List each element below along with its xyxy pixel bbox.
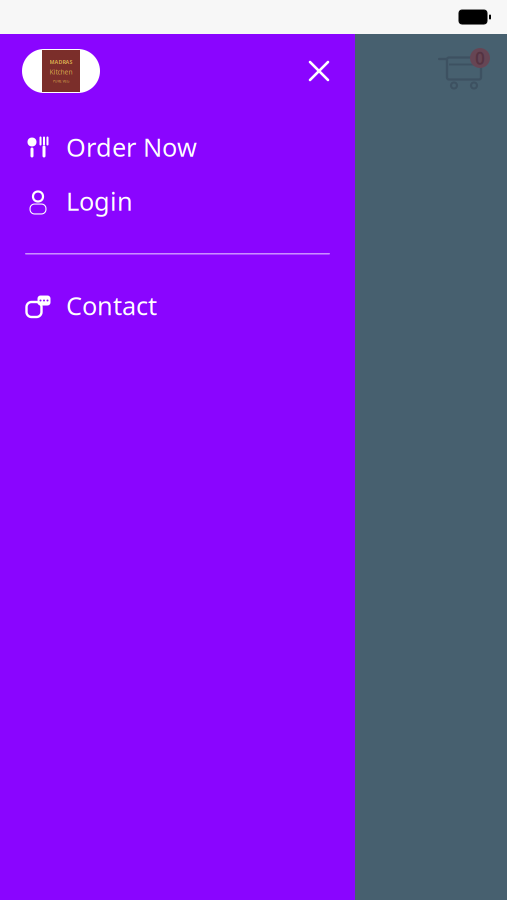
button[interactable]: Login (0, 174, 355, 228)
staticText: Contact (66, 289, 157, 322)
staticText: NON VEGETARIAN (10, 132, 180, 159)
staticText: 0 (475, 46, 485, 69)
staticText: MADRAS (49, 58, 72, 65)
staticText: Kitchen (49, 67, 72, 76)
button[interactable]: Contact (0, 278, 355, 332)
button[interactable]: Close menu (297, 49, 341, 93)
button[interactable]: Order Now (0, 120, 355, 174)
staticText: SHES (0, 207, 44, 231)
staticText: Login (66, 184, 133, 218)
staticText: Order Now (66, 130, 197, 164)
staticText: Add (38, 276, 82, 306)
staticText: PURE VEG (52, 78, 69, 84)
